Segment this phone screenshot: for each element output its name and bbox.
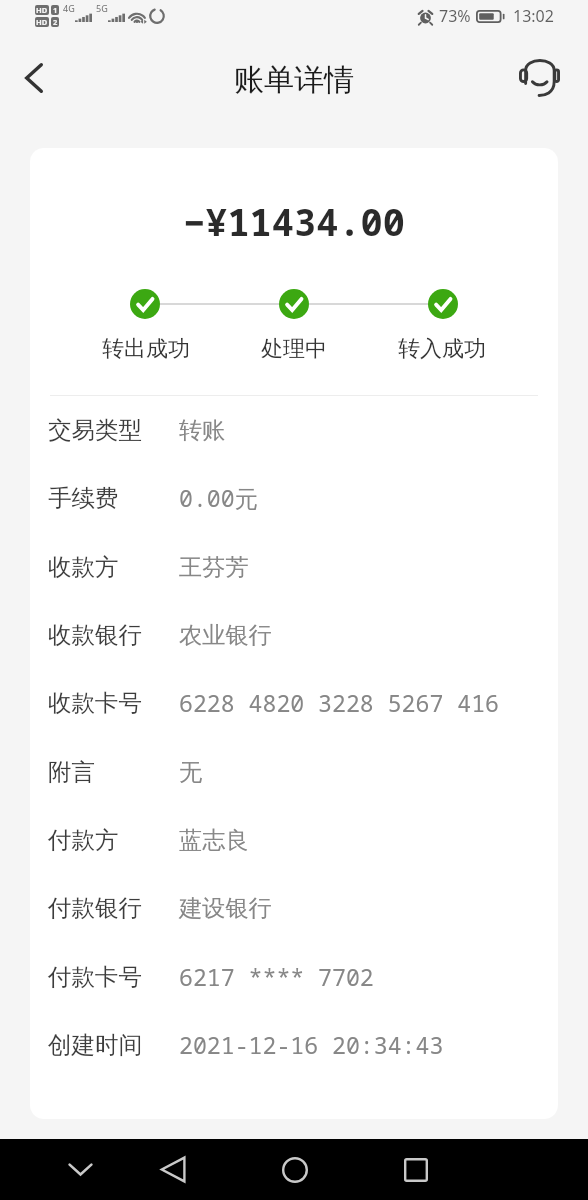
- button[interactable]: Back: [143, 1139, 203, 1200]
- staticText: 无: [179, 758, 203, 787]
- button[interactable]: Back: [0, 38, 68, 118]
- staticText: 5G: [96, 2, 108, 14]
- staticText: 转出成功: [102, 335, 190, 363]
- staticText: 转入成功: [398, 335, 486, 363]
- staticText: HD: [36, 17, 48, 27]
- staticText: HD: [36, 5, 48, 15]
- staticText: 手续费: [48, 483, 179, 513]
- button[interactable]: Recent apps: [386, 1139, 446, 1200]
- staticText: 6228 4820 3228 5267 416: [179, 687, 499, 719]
- staticText: 1: [53, 5, 58, 15]
- staticText: 0.00元: [179, 482, 258, 514]
- button[interactable]: Home: [265, 1139, 325, 1200]
- button[interactable]: Hide navigation bar: [52, 1139, 108, 1200]
- staticText: 蓝志良: [179, 826, 249, 855]
- staticText: −¥11434.00: [30, 196, 558, 246]
- staticText: 6217 **** 7702: [179, 961, 374, 993]
- staticText: 73%: [439, 5, 471, 27]
- staticText: 账单详情: [234, 61, 354, 99]
- staticText: 2: [53, 17, 58, 27]
- staticText: 收款银行: [48, 620, 179, 650]
- button[interactable]: Customer service: [503, 37, 575, 117]
- staticText: 4G: [63, 2, 75, 14]
- staticText: 付款方: [48, 825, 179, 855]
- staticText: 建设银行: [179, 894, 272, 923]
- staticText: 付款卡号: [48, 962, 179, 992]
- staticText: 王芬芳: [179, 553, 249, 582]
- staticText: 创建时间: [48, 1030, 179, 1060]
- staticText: 转账: [179, 416, 226, 445]
- staticText: 处理中: [261, 335, 327, 363]
- staticText: 交易类型: [48, 415, 179, 445]
- staticText: 2021-12-16 20:34:43: [179, 1029, 444, 1061]
- staticText: 13:02: [513, 5, 554, 27]
- staticText: 收款卡号: [48, 688, 179, 718]
- staticText: 收款方: [48, 552, 179, 582]
- staticText: 付款银行: [48, 893, 179, 923]
- staticText: 农业银行: [179, 621, 272, 650]
- staticText: 附言: [48, 757, 179, 787]
